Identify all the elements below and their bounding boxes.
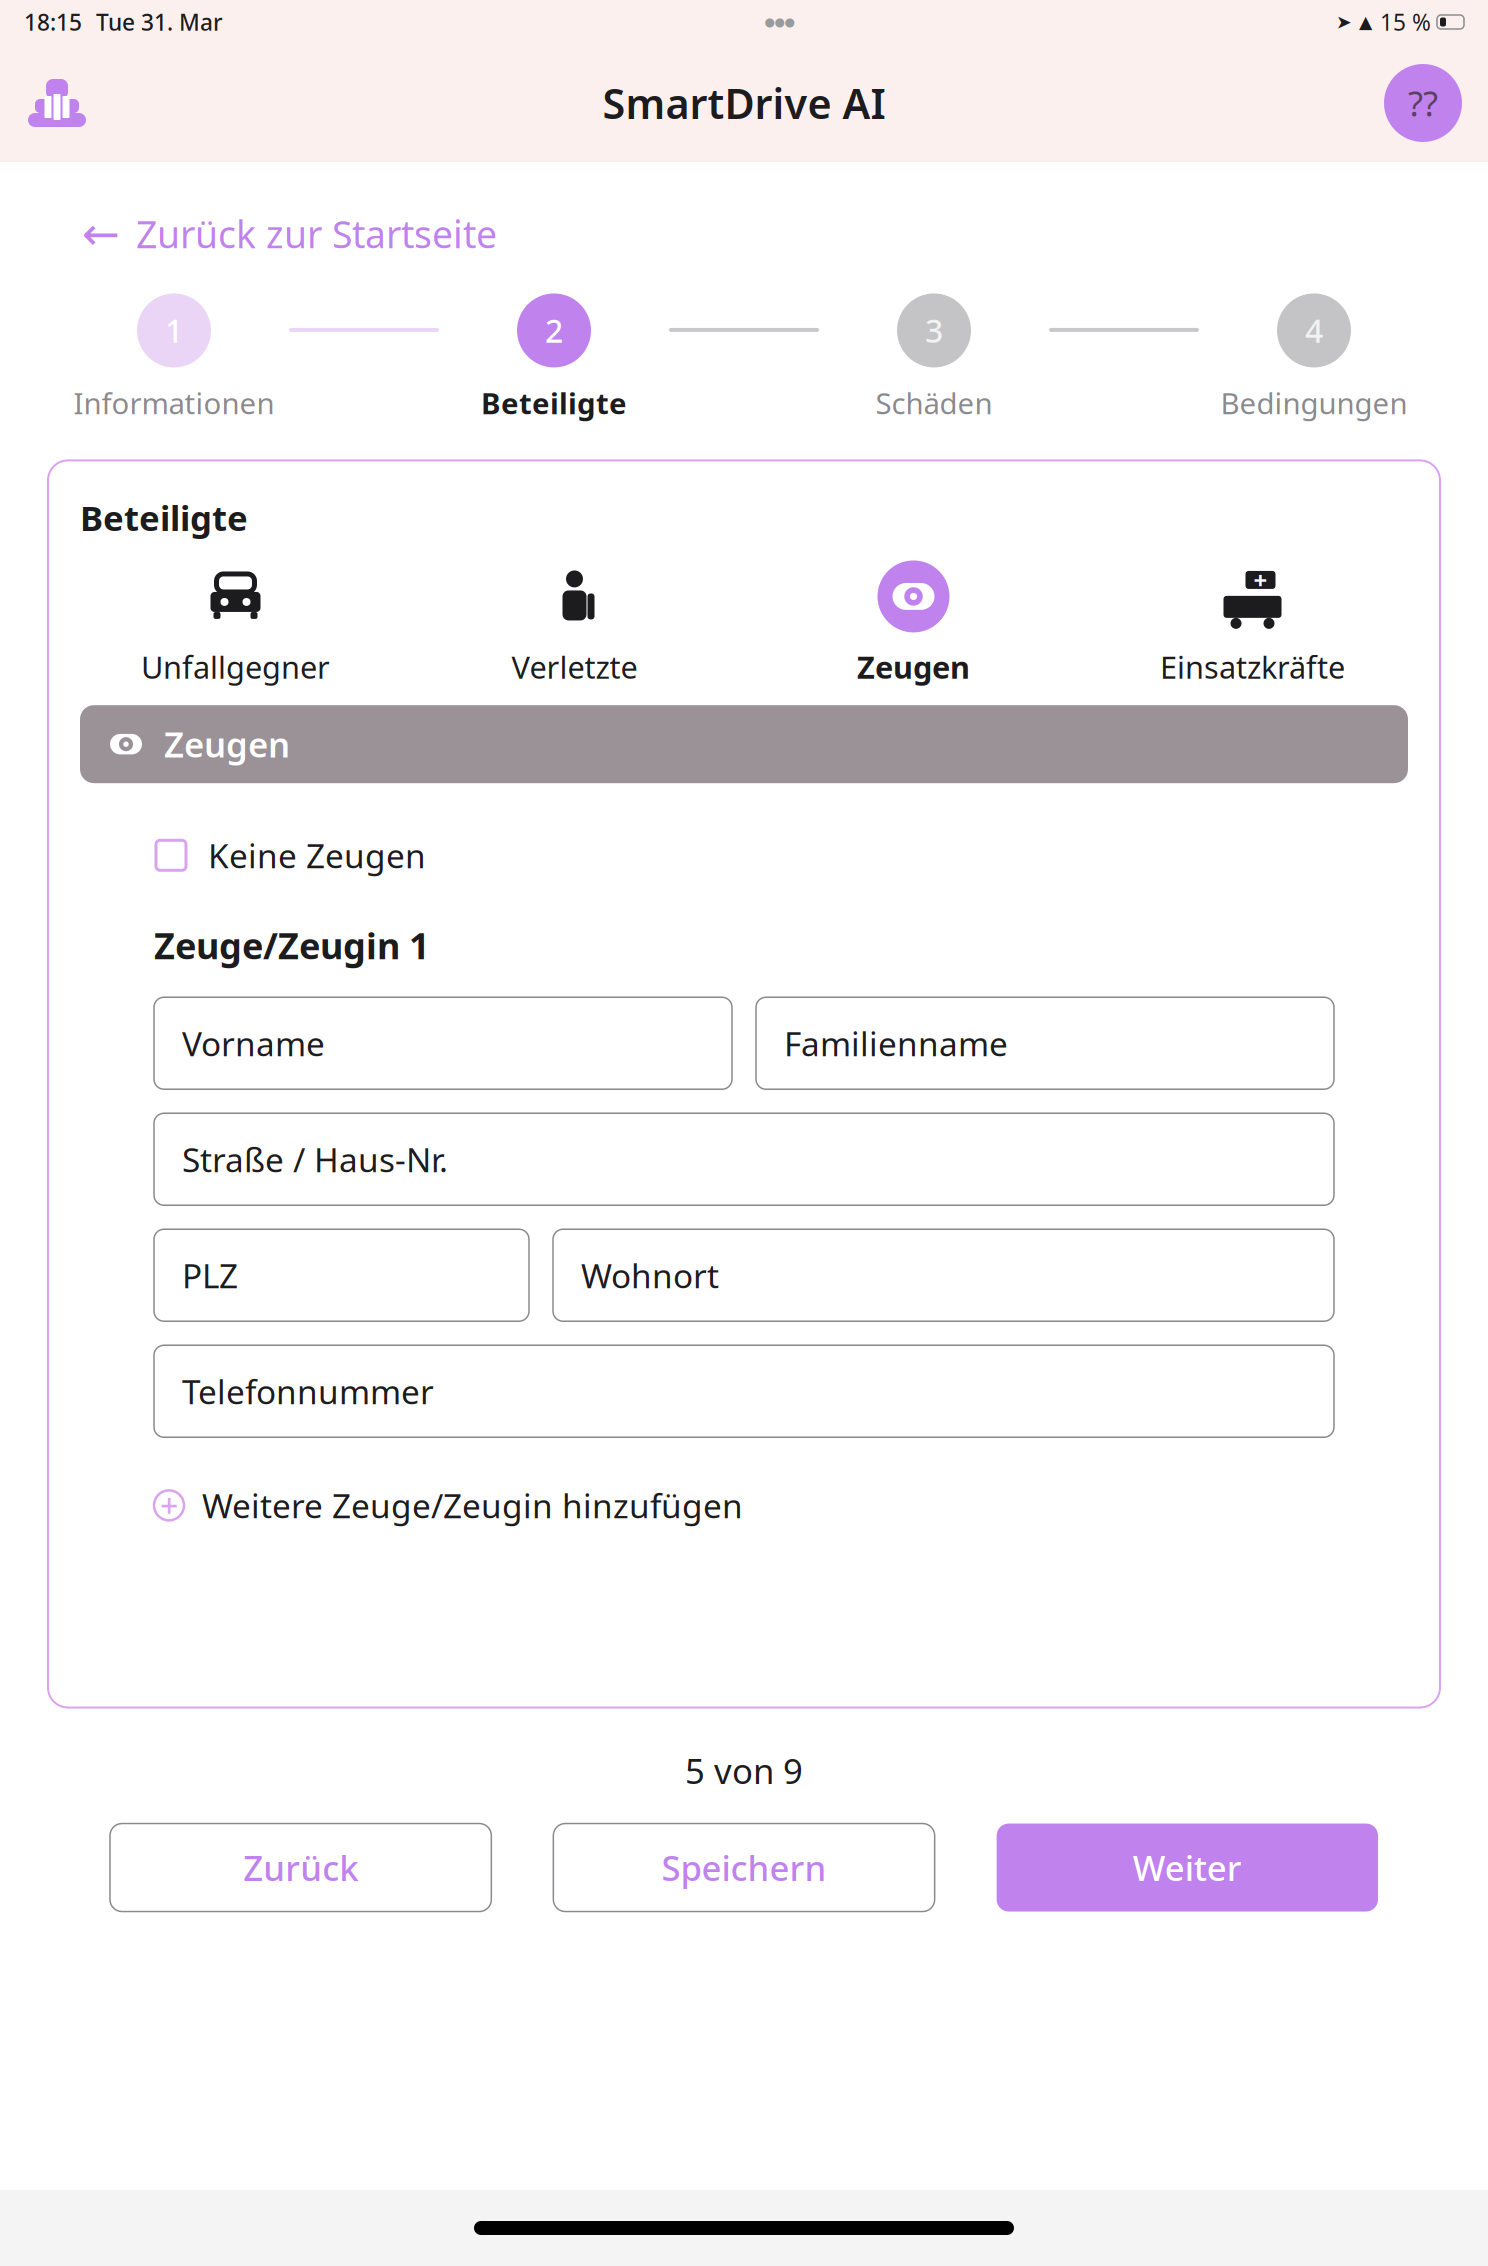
staticText: Schäden <box>875 383 992 422</box>
button[interactable]: Unfallgegner <box>66 554 405 691</box>
staticText: 15 % <box>1380 7 1431 37</box>
staticText: 3 <box>925 309 943 352</box>
staticText: PLZ <box>182 1253 238 1297</box>
button[interactable]: Straße / Haus-Nr. <box>154 1113 1334 1205</box>
button[interactable]: Telefonnummer <box>154 1345 1334 1437</box>
staticText: Zeugen <box>857 646 970 687</box>
button[interactable]: Zeugen <box>744 554 1083 691</box>
button[interactable]: Vorname <box>154 997 732 1089</box>
staticText: Familienname <box>784 1021 1008 1065</box>
staticText: Tue 31. Mar <box>96 7 223 37</box>
staticText: Unfallgegner <box>141 646 330 687</box>
staticText: ← <box>82 208 120 259</box>
button[interactable]: Wohnort <box>553 1229 1334 1321</box>
staticText: 5 von 9 <box>685 1747 803 1793</box>
staticText: Zeuge/Zeugin 1 <box>154 921 430 969</box>
button[interactable]: + <box>1083 554 1422 691</box>
staticText: 4 <box>1305 309 1323 352</box>
staticText: Zeugen <box>164 721 290 767</box>
staticText: + <box>1253 564 1267 596</box>
staticText: Bedingungen <box>1220 383 1407 422</box>
staticText: ●●● <box>764 15 794 29</box>
staticText: Speichern <box>661 1844 826 1890</box>
staticText: Informationen <box>73 383 274 422</box>
staticText: 1 <box>165 309 183 352</box>
staticText: SmartDrive AI <box>602 76 885 130</box>
staticText: ?? <box>1408 80 1438 126</box>
button[interactable]: ← <box>82 208 497 259</box>
button[interactable]: PLZ <box>154 1229 529 1321</box>
staticText: 2 <box>545 309 563 352</box>
staticText: Wohnort <box>581 1253 719 1297</box>
button[interactable]: Weiter <box>997 1823 1378 1911</box>
staticText: + <box>160 1484 178 1527</box>
button[interactable]: Zurück <box>110 1823 491 1911</box>
button[interactable]: Familienname <box>756 997 1334 1089</box>
staticText: Vorname <box>182 1021 325 1065</box>
staticText: Zurück zur Startseite <box>136 209 497 258</box>
staticText: Einsatzkräfte <box>1160 646 1345 687</box>
staticText: ➤ <box>1336 11 1352 33</box>
staticText: Keine Zeugen <box>208 833 426 877</box>
button[interactable]: Account <box>1384 64 1462 142</box>
staticText: ▲ <box>1359 12 1372 32</box>
staticText: Beteiligte <box>80 494 248 540</box>
staticText: Telefonnummer <box>182 1369 434 1413</box>
staticText: 18:15 <box>24 7 82 37</box>
button[interactable]: Keine Zeugen <box>156 833 426 877</box>
staticText: Weiter <box>1133 1844 1242 1890</box>
button[interactable]: Speichern <box>553 1823 935 1911</box>
button[interactable]: SmartDrive AI Home <box>26 75 88 131</box>
staticText: Zurück <box>243 1844 358 1890</box>
staticText: Verletzte <box>511 646 637 687</box>
button[interactable]: + <box>154 1483 743 1527</box>
staticText: Weitere Zeuge/Zeugin hinzufügen <box>202 1483 743 1527</box>
staticText: Straße / Haus-Nr. <box>182 1137 448 1181</box>
staticText: Beteiligte <box>481 383 627 422</box>
button[interactable]: Verletzte <box>405 554 744 691</box>
